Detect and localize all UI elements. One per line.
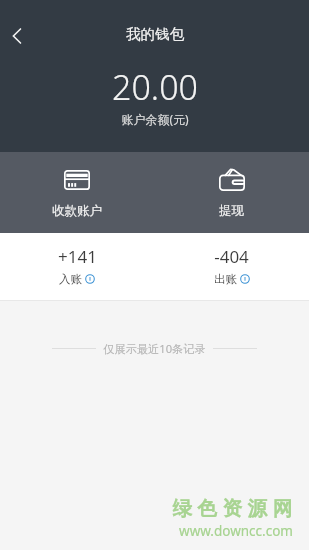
button[interactable]: Back bbox=[3, 22, 31, 50]
staticText: 绿色资源网 bbox=[172, 496, 298, 521]
button[interactable]: 提现 bbox=[154, 152, 309, 233]
staticText: 账户余额(元) bbox=[121, 111, 189, 127]
button[interactable]: -404 bbox=[154, 233, 309, 300]
staticText: 仅展示最近10条记录 bbox=[103, 341, 206, 356]
staticText: 收款账户 bbox=[52, 203, 102, 219]
staticText: +141 bbox=[58, 245, 97, 268]
staticText: 我的钱包 bbox=[126, 25, 184, 43]
staticText: www.downcc.com bbox=[179, 522, 293, 540]
staticText: 出账 bbox=[214, 272, 237, 286]
staticText: 提现 bbox=[219, 203, 244, 219]
button[interactable]: 收款账户 bbox=[0, 152, 154, 233]
button[interactable]: +141 bbox=[0, 233, 154, 300]
staticText: -404 bbox=[214, 245, 249, 268]
staticText: 入账 bbox=[59, 272, 82, 286]
staticText: 20.00 bbox=[112, 64, 198, 110]
